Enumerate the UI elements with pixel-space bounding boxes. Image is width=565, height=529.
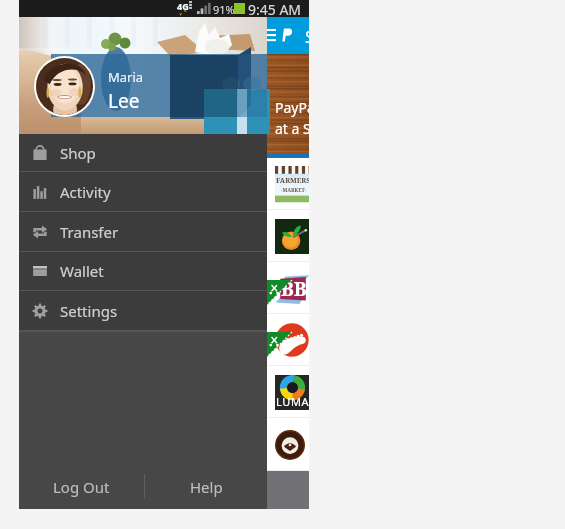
staticText: Shop <box>305 25 309 48</box>
button[interactable] <box>19 418 309 471</box>
staticText: Activity <box>60 182 111 202</box>
button[interactable]: Log Out <box>19 464 144 509</box>
button[interactable]: Profile photo <box>36 58 93 115</box>
staticText: Transfer <box>60 222 119 242</box>
button[interactable]: Settings <box>19 291 267 330</box>
button[interactable]: Activity <box>19 172 267 211</box>
staticText: ·MARKET· <box>281 187 307 194</box>
staticText: PayPal <box>275 98 309 117</box>
staticText: BB <box>281 276 307 302</box>
button[interactable]: BB <box>19 262 309 314</box>
button[interactable] <box>19 210 309 262</box>
staticText: FARMERS <box>276 176 309 186</box>
staticText: Help <box>190 477 223 497</box>
staticText: Settings <box>60 301 118 321</box>
button[interactable]: Wallet <box>19 252 267 290</box>
staticText: 91% <box>213 2 235 17</box>
button[interactable]: LUMA <box>19 366 309 418</box>
staticText: 9:45 AM <box>248 0 302 17</box>
staticText: LUMA <box>276 394 309 409</box>
button[interactable]: Shop <box>19 134 267 171</box>
button[interactable]: Transfer <box>19 212 267 251</box>
staticText: at a S <box>275 119 309 138</box>
staticText: Shop <box>60 143 96 163</box>
button[interactable]: Open navigation menu <box>259 26 277 44</box>
staticText: 4G <box>177 0 189 12</box>
staticText: Lee <box>108 88 140 114</box>
button[interactable] <box>19 314 309 366</box>
staticText: Log Out <box>53 477 110 497</box>
button[interactable]: FARMERS <box>19 158 309 210</box>
staticText: Maria <box>108 68 144 86</box>
staticText: Wallet <box>60 261 104 281</box>
button[interactable]: Help <box>145 464 267 509</box>
